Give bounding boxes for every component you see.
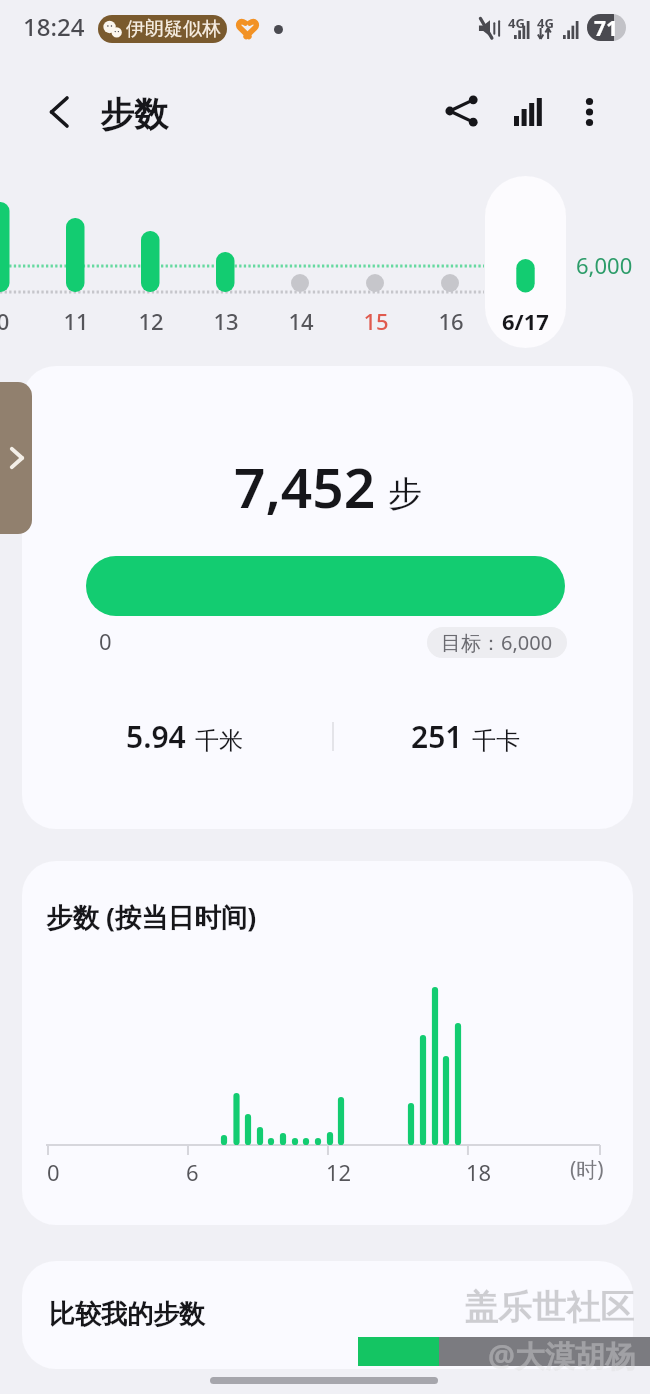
staticText: 7,452 [234,449,376,524]
staticText: 6,000 [576,250,633,280]
staticText: 18 [466,1157,492,1187]
staticText: 71 [594,14,619,41]
staticText: 15 [351,306,401,336]
button[interactable]: 比较我的步数 [22,1261,633,1369]
staticText: 盖乐世社区 [464,1286,634,1329]
button[interactable]: Back [34,87,84,137]
staticText: 251 [411,716,463,757]
staticText: 比较我的步数 [49,1298,205,1331]
staticText: 目标：6,000 [441,629,553,656]
staticText: 6 [186,1157,199,1187]
staticText: 11 [51,306,101,336]
staticText: 4G [537,14,554,32]
button[interactable]: Share [435,85,487,137]
staticText: 步数 (按当日时间) [46,899,257,935]
staticText: 0 [47,1157,60,1187]
button[interactable]: 7,452 [22,366,633,829]
staticText: @大漠胡杨 [488,1335,635,1376]
button[interactable]: 6/17 [485,176,566,348]
staticText: 13 [201,306,251,336]
button[interactable]: More options [563,84,615,136]
staticText: 16 [426,306,476,336]
staticText: 千米 [195,726,243,756]
staticText: 伊朗疑似林 [126,17,221,41]
staticText: 12 [326,1157,352,1187]
staticText: 5.94 [126,716,186,757]
button[interactable]: 步数 (按当日时间) [22,861,633,1225]
button[interactable]: Statistics [502,84,554,136]
staticText: 18:24 [23,10,85,43]
staticText: 千卡 [472,726,520,756]
staticText: 0 [0,306,28,336]
staticText: (时) [570,1155,604,1184]
staticText: 步 [388,472,422,515]
staticText: 0 [99,626,112,656]
staticText: 12 [126,306,176,336]
staticText: 14 [276,306,326,336]
staticText: 步数 [100,93,168,136]
staticText: 4G [508,14,525,32]
staticText: 6/17 [502,306,549,336]
button[interactable]: Edge panel handle [0,382,32,534]
